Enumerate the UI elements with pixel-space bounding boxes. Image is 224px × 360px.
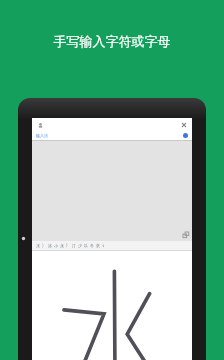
button[interactable]: 输入法 — [32, 131, 192, 140]
staticText: 氵 — [66, 243, 70, 248]
button[interactable]: 以 — [84, 243, 88, 248]
button[interactable]: 氵 — [66, 243, 70, 248]
button[interactable]: 冬 — [90, 243, 94, 248]
button[interactable]: Account — [36, 121, 44, 129]
staticText: 汀 — [72, 243, 76, 248]
staticText: 手写输入字符或字母 — [0, 33, 224, 49]
staticText: 输入法 — [36, 133, 48, 138]
staticText: 以 — [84, 243, 88, 248]
staticText: 少 — [78, 243, 82, 248]
staticText: 求 — [96, 243, 100, 248]
button[interactable]: 小 — [54, 243, 58, 248]
button[interactable]: 冫 — [42, 243, 46, 248]
button[interactable]: 讠 — [102, 243, 106, 248]
button[interactable]: 水 — [36, 243, 40, 248]
staticText: 冬 — [90, 243, 94, 248]
staticText: 小 — [54, 243, 58, 248]
staticText: 冫 — [42, 243, 46, 248]
button[interactable]: Close — [180, 121, 188, 129]
button[interactable]: 永 — [60, 243, 64, 248]
staticText: 讠 — [102, 243, 106, 248]
button[interactable]: 少 — [78, 243, 82, 248]
staticText: 冰 — [48, 243, 52, 248]
button[interactable]: 冰 — [48, 243, 52, 248]
staticText: 永 — [60, 243, 64, 248]
staticText: 水 — [36, 243, 40, 248]
button[interactable]: Handwriting input area — [32, 251, 192, 360]
button[interactable]: 汀 — [72, 243, 76, 248]
button[interactable]: 求 — [96, 243, 100, 248]
